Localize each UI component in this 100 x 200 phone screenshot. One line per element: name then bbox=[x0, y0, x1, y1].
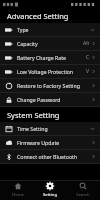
button[interactable]: Type bbox=[0, 23, 100, 36]
staticText: Home bbox=[12, 192, 24, 198]
staticText: Connect other Bluetooth bbox=[17, 153, 78, 160]
staticText: Ah bbox=[83, 40, 90, 47]
button[interactable]: Setting bbox=[35, 180, 65, 200]
staticText: Low Voltage Protection bbox=[17, 68, 74, 75]
staticText: Capacity bbox=[17, 40, 38, 47]
staticText: Search bbox=[76, 192, 90, 198]
staticText: V bbox=[86, 68, 90, 75]
staticText: System Setting bbox=[7, 110, 60, 120]
staticText: Change Password bbox=[17, 96, 61, 103]
button[interactable]: Firmware Update bbox=[0, 136, 100, 149]
staticText: Firmware Update bbox=[17, 139, 60, 146]
staticText: Battery Charge Rate bbox=[17, 54, 66, 61]
button[interactable]: Low Voltage Protection bbox=[0, 65, 100, 78]
staticText: Setting bbox=[43, 192, 57, 198]
staticText: Restore to Factory Setting bbox=[17, 82, 80, 89]
button[interactable]: Battery Charge Rate bbox=[0, 51, 100, 64]
staticText: Type bbox=[17, 26, 29, 33]
button[interactable]: Restore to Factory Setting bbox=[0, 79, 100, 92]
button[interactable]: Home bbox=[3, 180, 33, 200]
staticText: C bbox=[86, 54, 90, 61]
button[interactable]: Connect other Bluetooth bbox=[0, 150, 100, 163]
button[interactable]: Search bbox=[68, 180, 98, 200]
staticText: Advanced Setting bbox=[7, 11, 69, 21]
button[interactable]: Capacity bbox=[0, 37, 100, 50]
button[interactable]: Change Password bbox=[0, 93, 100, 106]
button[interactable]: Time Setting bbox=[0, 122, 100, 135]
staticText: Time Setting bbox=[17, 125, 48, 132]
